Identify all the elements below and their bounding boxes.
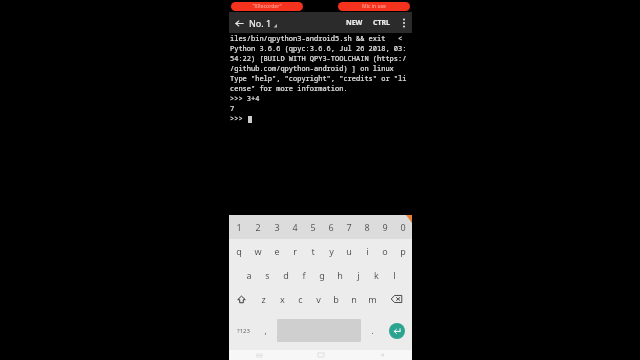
staticText: 1 — [236, 221, 242, 233]
button[interactable]: ?123 — [229, 311, 257, 350]
button[interactable]: g — [313, 263, 331, 287]
button[interactable]: s — [258, 263, 277, 287]
staticText: g — [319, 269, 325, 281]
staticText: ?123 — [237, 327, 250, 335]
button[interactable]: Mic in use — [338, 2, 410, 11]
button[interactable]: 1 — [229, 215, 248, 239]
staticText: "XRecorder" — [252, 3, 282, 10]
staticText: Python 3.6.6 (qpyc:3.6.6, Jul 26 2018, 0… — [230, 44, 407, 54]
staticText: No. 1 — [249, 17, 272, 29]
button[interactable]: u — [340, 239, 358, 263]
button[interactable]: Recents — [229, 350, 290, 360]
button[interactable]: 5 — [304, 215, 322, 239]
button[interactable]: More options — [396, 12, 412, 33]
staticText: NEW — [346, 18, 363, 28]
button[interactable]: Enter — [389, 323, 405, 339]
staticText: 7 — [346, 221, 352, 233]
button[interactable]: 3 — [267, 215, 286, 239]
staticText: r — [293, 245, 297, 257]
button[interactable]: k — [367, 263, 385, 287]
staticText: z — [261, 293, 266, 305]
button[interactable]: f — [295, 263, 313, 287]
button[interactable]: w — [248, 239, 267, 263]
button[interactable]: No. 1 — [249, 17, 277, 29]
button[interactable]: "XRecorder" — [231, 2, 303, 11]
button[interactable]: p — [394, 239, 412, 263]
staticText: f — [302, 269, 306, 281]
staticText: . — [371, 325, 374, 336]
button[interactable]: 0 — [394, 215, 412, 239]
button[interactable]: m — [363, 287, 381, 311]
button[interactable]: j — [349, 263, 367, 287]
button[interactable]: l — [385, 263, 403, 287]
button[interactable]: CTRL — [368, 14, 396, 32]
button[interactable]: Backspace — [381, 287, 412, 311]
button[interactable]: NEW — [341, 14, 368, 32]
staticText: l — [393, 269, 396, 281]
staticText: 7 — [230, 104, 235, 114]
button[interactable]: i — [358, 239, 376, 263]
staticText: 6 — [328, 221, 334, 233]
button[interactable]: e — [267, 239, 286, 263]
button[interactable]: h — [331, 263, 349, 287]
button[interactable]: r — [286, 239, 304, 263]
staticText: cense" for more information. — [230, 84, 348, 94]
button[interactable]: n — [345, 287, 363, 311]
button[interactable]: y — [322, 239, 340, 263]
staticText: e — [274, 245, 280, 257]
staticText: 54:22) [BUILD WITH QPY3-TOOLCHAIN (https… — [230, 54, 407, 64]
staticText: >>> — [230, 114, 247, 124]
staticText: a — [246, 269, 252, 281]
button[interactable]: 2 — [248, 215, 267, 239]
staticText: v — [316, 293, 321, 305]
staticText: >>> 3+4 — [230, 94, 260, 104]
button[interactable]: z — [254, 287, 273, 311]
staticText: 9 — [382, 221, 388, 233]
button[interactable]: Shift — [229, 287, 254, 311]
button[interactable]: 7 — [340, 215, 358, 239]
button[interactable]: , — [257, 311, 274, 350]
staticText: c — [298, 293, 303, 305]
staticText: CTRL — [373, 18, 391, 28]
button[interactable]: 8 — [358, 215, 376, 239]
staticText: 5 — [310, 221, 316, 233]
staticText: u — [346, 245, 352, 257]
staticText: 3 — [274, 221, 280, 233]
button[interactable]: x — [273, 287, 291, 311]
button[interactable]: c — [291, 287, 309, 311]
button[interactable]: d — [277, 263, 295, 287]
button[interactable]: 4 — [286, 215, 304, 239]
staticText: t — [311, 245, 315, 257]
staticText: d — [283, 269, 289, 281]
staticText: s — [265, 269, 270, 281]
staticText: j — [357, 269, 360, 281]
button[interactable]: . — [364, 311, 381, 350]
staticText: b — [333, 293, 339, 305]
staticText: m — [368, 293, 377, 305]
button[interactable]: Back — [229, 13, 249, 33]
staticText: k — [374, 269, 379, 281]
staticText: o — [382, 245, 388, 257]
staticText: x — [280, 293, 285, 305]
button[interactable]: t — [304, 239, 322, 263]
staticText: h — [337, 269, 343, 281]
button[interactable]: a — [239, 263, 258, 287]
button[interactable]: b — [327, 287, 345, 311]
button[interactable]: 6 — [322, 215, 340, 239]
button[interactable]: 9 — [376, 215, 394, 239]
staticText: Mic in use — [362, 3, 386, 10]
staticText: , — [264, 325, 267, 336]
button[interactable]: v — [309, 287, 327, 311]
button[interactable]: o — [376, 239, 394, 263]
staticText: n — [351, 293, 357, 305]
staticText: 0 — [400, 221, 406, 233]
button[interactable]: Home — [290, 350, 351, 360]
staticText: 2 — [255, 221, 261, 233]
staticText: p — [400, 245, 406, 257]
staticText: iles/bin/qpython3-android5.sh && exit < — [230, 34, 403, 44]
staticText: Type "help", "copyright", "credits" or "… — [230, 74, 407, 84]
button[interactable]: q — [229, 239, 248, 263]
staticText: i — [366, 245, 369, 257]
